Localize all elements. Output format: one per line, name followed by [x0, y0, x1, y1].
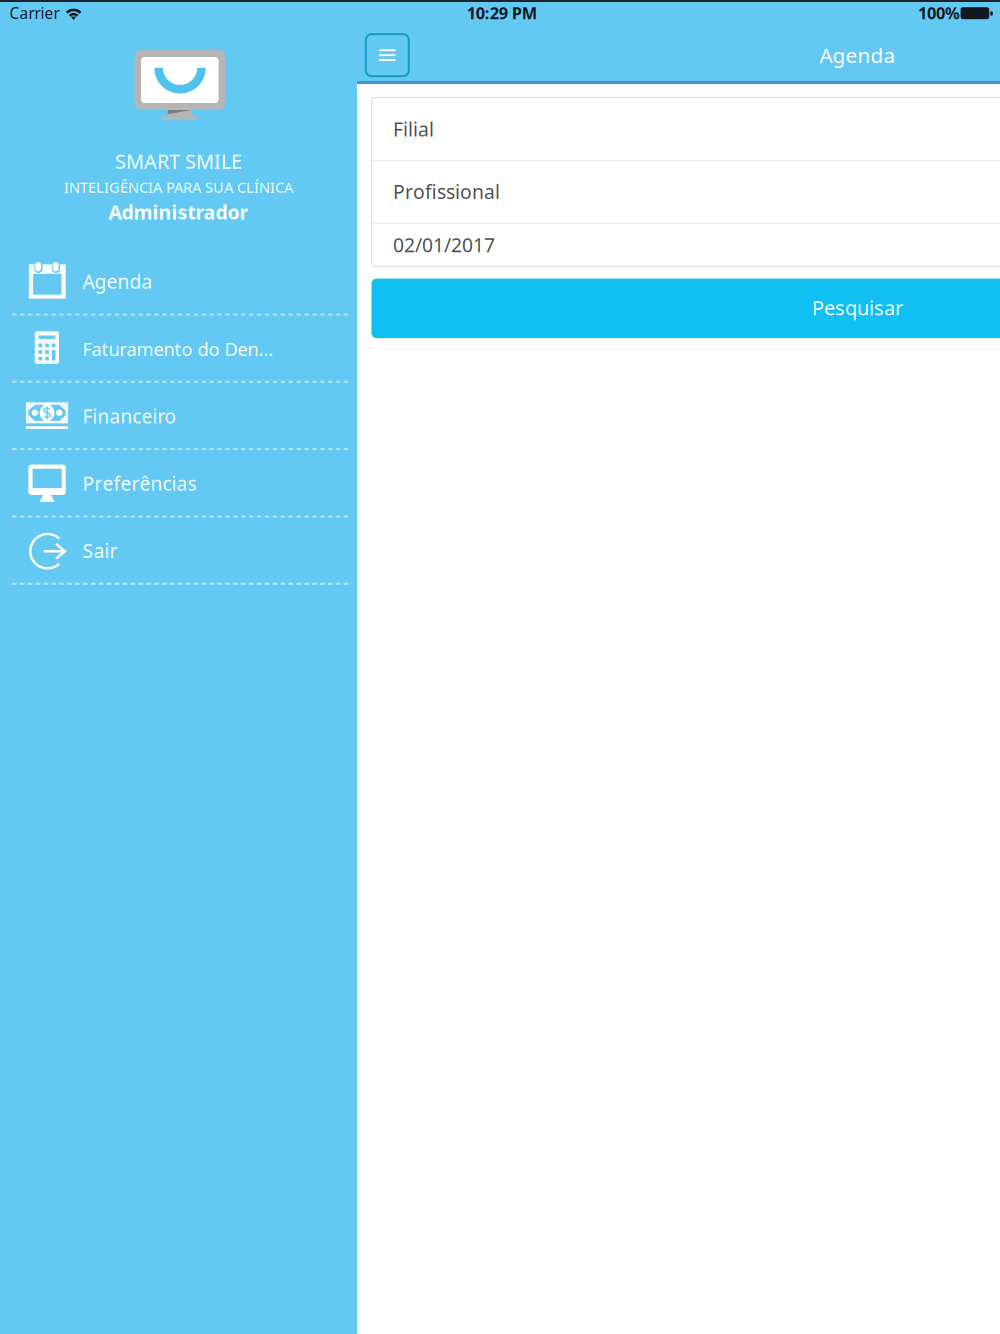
- staticText: Profissional: [393, 178, 500, 205]
- staticText: Pesquisar: [812, 294, 903, 321]
- button[interactable]: Preferências: [0, 450, 357, 517]
- staticText: Financeiro: [82, 403, 176, 429]
- staticText: Carrier: [9, 3, 59, 23]
- staticText: 10:29 PM: [467, 2, 537, 24]
- staticText: Filial: [393, 116, 434, 142]
- button[interactable]: Filial: [371, 97, 1000, 160]
- button[interactable]: Financeiro: [0, 382, 357, 450]
- staticText: SMART SMILE: [115, 147, 242, 175]
- button[interactable]: 02/01/2017: [371, 223, 1000, 266]
- staticText: INTELIGÊNCIA PARA SUA CLÍNICA: [64, 177, 293, 197]
- button[interactable]: Profissional: [371, 160, 1000, 223]
- button[interactable]: Sair: [0, 517, 357, 584]
- staticText: Agenda: [82, 268, 152, 294]
- button[interactable]: Agenda: [0, 248, 357, 315]
- button[interactable]: Faturamento do Den...: [0, 315, 357, 382]
- button[interactable]: Menu: [365, 33, 410, 77]
- staticText: Sair: [82, 537, 117, 564]
- staticText: Agenda: [819, 41, 895, 69]
- staticText: Administrador: [108, 199, 248, 225]
- button[interactable]: Pesquisar: [371, 279, 1000, 338]
- staticText: Faturamento do Den...: [82, 336, 273, 361]
- staticText: 100%: [918, 2, 960, 24]
- staticText: 02/01/2017: [393, 232, 495, 258]
- staticText: Preferências: [82, 470, 196, 496]
